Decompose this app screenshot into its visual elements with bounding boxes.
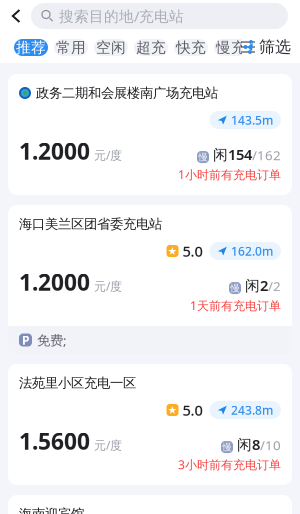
staticText: 5.0 xyxy=(178,241,202,261)
staticText: P xyxy=(22,332,29,348)
staticText: 1天前有充电订单 xyxy=(190,297,281,313)
button[interactable]: 法苑里小区充电一区 xyxy=(8,364,292,485)
staticText: 超充 xyxy=(136,38,166,56)
staticText: 闲8 xyxy=(233,435,260,454)
staticText: 慢充 xyxy=(216,38,246,56)
staticText: 海口美兰区团省委充电站 xyxy=(19,216,162,232)
staticText: 法苑里小区充电一区 xyxy=(19,375,136,391)
staticText: 3小时前有充电订单 xyxy=(178,456,281,472)
button[interactable]: 超充 xyxy=(134,39,168,56)
button[interactable]: 慢充 xyxy=(214,39,248,56)
button[interactable]: 推荐 xyxy=(14,39,48,56)
staticText: 常用 xyxy=(56,38,86,56)
staticText: 筛选 xyxy=(259,37,291,57)
staticText: 闲2 xyxy=(241,276,268,295)
staticText: 元/度 xyxy=(90,278,122,294)
staticText: 元/度 xyxy=(90,437,122,453)
staticText: 快充 xyxy=(176,38,206,56)
staticText: 慢 xyxy=(198,151,207,163)
button[interactable]: 快充 xyxy=(174,39,208,56)
staticText: /162 xyxy=(252,146,281,164)
staticText: 闲154 xyxy=(209,145,252,164)
staticText: 慢 xyxy=(222,441,231,453)
button[interactable]: 常用 xyxy=(54,39,88,56)
staticText: 免费; xyxy=(37,331,67,349)
staticText: 1小时前有充电订单 xyxy=(178,166,281,182)
staticText: 空闲 xyxy=(96,38,126,56)
staticText: 推荐 xyxy=(16,38,46,56)
staticText: ★ xyxy=(167,404,177,416)
staticText: 162.0m xyxy=(231,243,273,259)
staticText: 243.8m xyxy=(231,402,273,418)
staticText: 1.2000 xyxy=(19,136,90,166)
button[interactable]: 筛选 xyxy=(241,37,300,57)
staticText: /10 xyxy=(260,436,281,454)
staticText: 政务二期和会展楼南广场充电站 xyxy=(36,85,218,101)
staticText: ★ xyxy=(167,245,177,257)
button[interactable]: 搜索目的地/充电站 xyxy=(31,3,288,29)
button[interactable]: 空闲 xyxy=(94,39,128,56)
button[interactable]: 海南迎宾馆 xyxy=(8,495,292,514)
staticText: 1.2000 xyxy=(19,267,90,297)
staticText: 搜索目的地/充电站 xyxy=(59,6,184,26)
button[interactable]: 政务二期和会展楼南广场充电站 xyxy=(8,74,292,195)
staticText: 143.5m xyxy=(231,112,273,128)
staticText: 5.0 xyxy=(178,400,202,420)
staticText: 元/度 xyxy=(90,147,122,163)
staticText: 1.5600 xyxy=(19,426,90,456)
button[interactable]: 返回 xyxy=(2,2,31,30)
button[interactable]: 海口美兰区团省委充电站 xyxy=(8,205,292,354)
staticText: /2 xyxy=(268,277,281,295)
staticText: 海南迎宾馆 xyxy=(19,506,84,514)
staticText: 慢 xyxy=(230,282,239,294)
